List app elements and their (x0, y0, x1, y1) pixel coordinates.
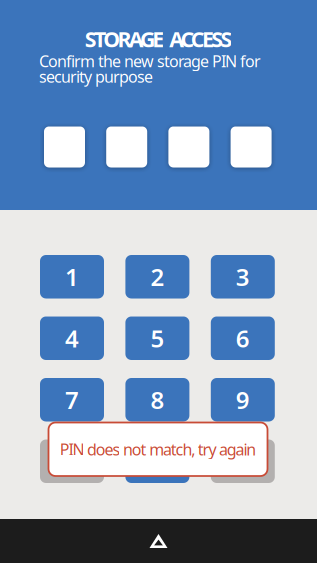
staticText: STORAGE (85, 25, 164, 53)
button[interactable]: 3 (211, 255, 275, 298)
staticText: Confirm (39, 50, 95, 72)
staticText: 7 (65, 384, 79, 416)
staticText: 3 (236, 261, 250, 293)
staticText: not (123, 439, 147, 460)
staticText: storage (157, 50, 209, 72)
staticText: 4 (65, 322, 79, 354)
staticText: PIN (60, 439, 84, 460)
staticText: again (219, 439, 256, 460)
staticText: 9 (236, 384, 250, 416)
staticText: purpose (95, 66, 153, 87)
staticText: security (39, 66, 92, 87)
button[interactable]: 7 (40, 378, 104, 421)
staticText: ACCESS (169, 25, 232, 53)
staticText: 2 (150, 261, 164, 293)
staticText: does (87, 439, 120, 460)
staticText: 0 (150, 445, 164, 477)
button[interactable]: 0 (125, 439, 189, 483)
button[interactable] (40, 439, 104, 483)
staticText: 1 (65, 261, 79, 293)
button[interactable]: 4 (40, 316, 104, 360)
staticText: 6 (236, 322, 250, 354)
button[interactable]: 2 (125, 255, 189, 298)
button[interactable]: 1 (40, 255, 104, 298)
staticText: PIN (212, 50, 237, 72)
button[interactable]: 9 (211, 378, 275, 421)
button[interactable]: 6 (211, 316, 275, 360)
staticText: for (240, 50, 261, 72)
button[interactable] (211, 439, 275, 483)
staticText: 5 (150, 322, 164, 354)
staticText: 8 (150, 384, 164, 416)
staticText: try (198, 439, 216, 460)
button[interactable]: 8 (125, 378, 189, 421)
button[interactable]: Back (143, 526, 173, 556)
staticText: match, (149, 439, 195, 460)
staticText: new (124, 50, 154, 72)
staticText: the (98, 50, 121, 72)
button[interactable]: 5 (125, 316, 189, 360)
